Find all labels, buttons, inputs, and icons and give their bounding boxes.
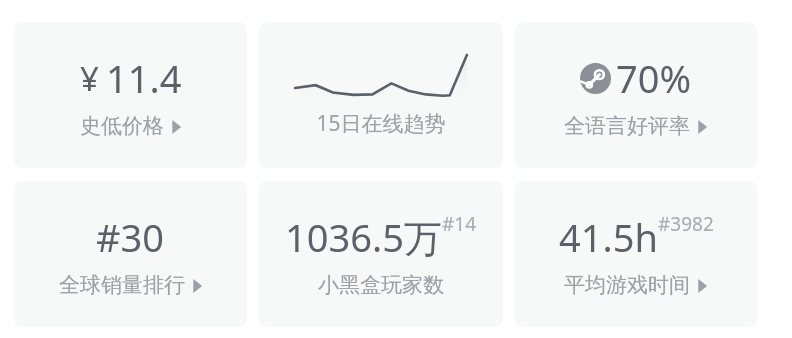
staticText: #30 <box>96 211 165 263</box>
staticText: 史低价格 <box>80 113 164 139</box>
button[interactable]: 15日在线趋势 <box>259 22 503 168</box>
staticText: 全语言好评率 <box>564 113 690 139</box>
button[interactable]: 70% <box>515 22 757 168</box>
staticText: 平均游戏时间 <box>564 272 690 298</box>
staticText: 小黑盒玩家数 <box>318 272 444 298</box>
staticText: #14 <box>442 211 477 237</box>
button[interactable]: 1036.5万 <box>259 181 503 327</box>
button[interactable]: ¥ <box>14 22 247 168</box>
staticText: 41.5h <box>559 211 658 263</box>
staticText: 全球销量排行 <box>59 272 185 298</box>
button[interactable]: 41.5h <box>515 181 757 327</box>
staticText: #3982 <box>658 211 714 237</box>
staticText: 70% <box>616 52 692 104</box>
button[interactable]: #30 <box>14 181 247 327</box>
staticText: 1036.5万 <box>285 211 442 263</box>
staticText: 11.4 <box>106 52 182 104</box>
staticText: 15日在线趋势 <box>316 109 446 138</box>
staticText: ¥ <box>80 56 99 101</box>
